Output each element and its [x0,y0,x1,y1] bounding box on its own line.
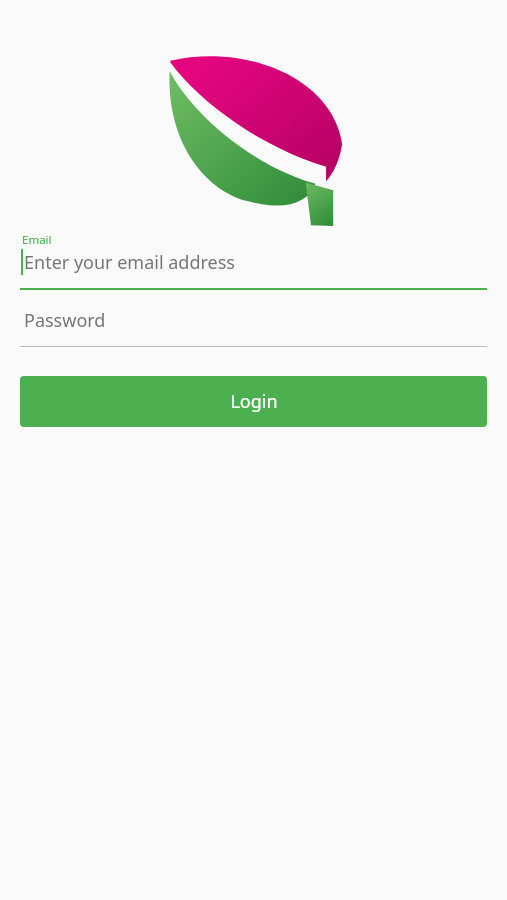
button[interactable]: Login [20,376,487,427]
button[interactable]: Email [0,228,507,290]
button[interactable]: Password [0,299,507,347]
staticText: Email [22,232,52,248]
staticText: Password [24,308,106,333]
staticText: Login [230,389,278,414]
staticText: Enter your email address [24,250,235,275]
other: App logo [165,52,343,226]
